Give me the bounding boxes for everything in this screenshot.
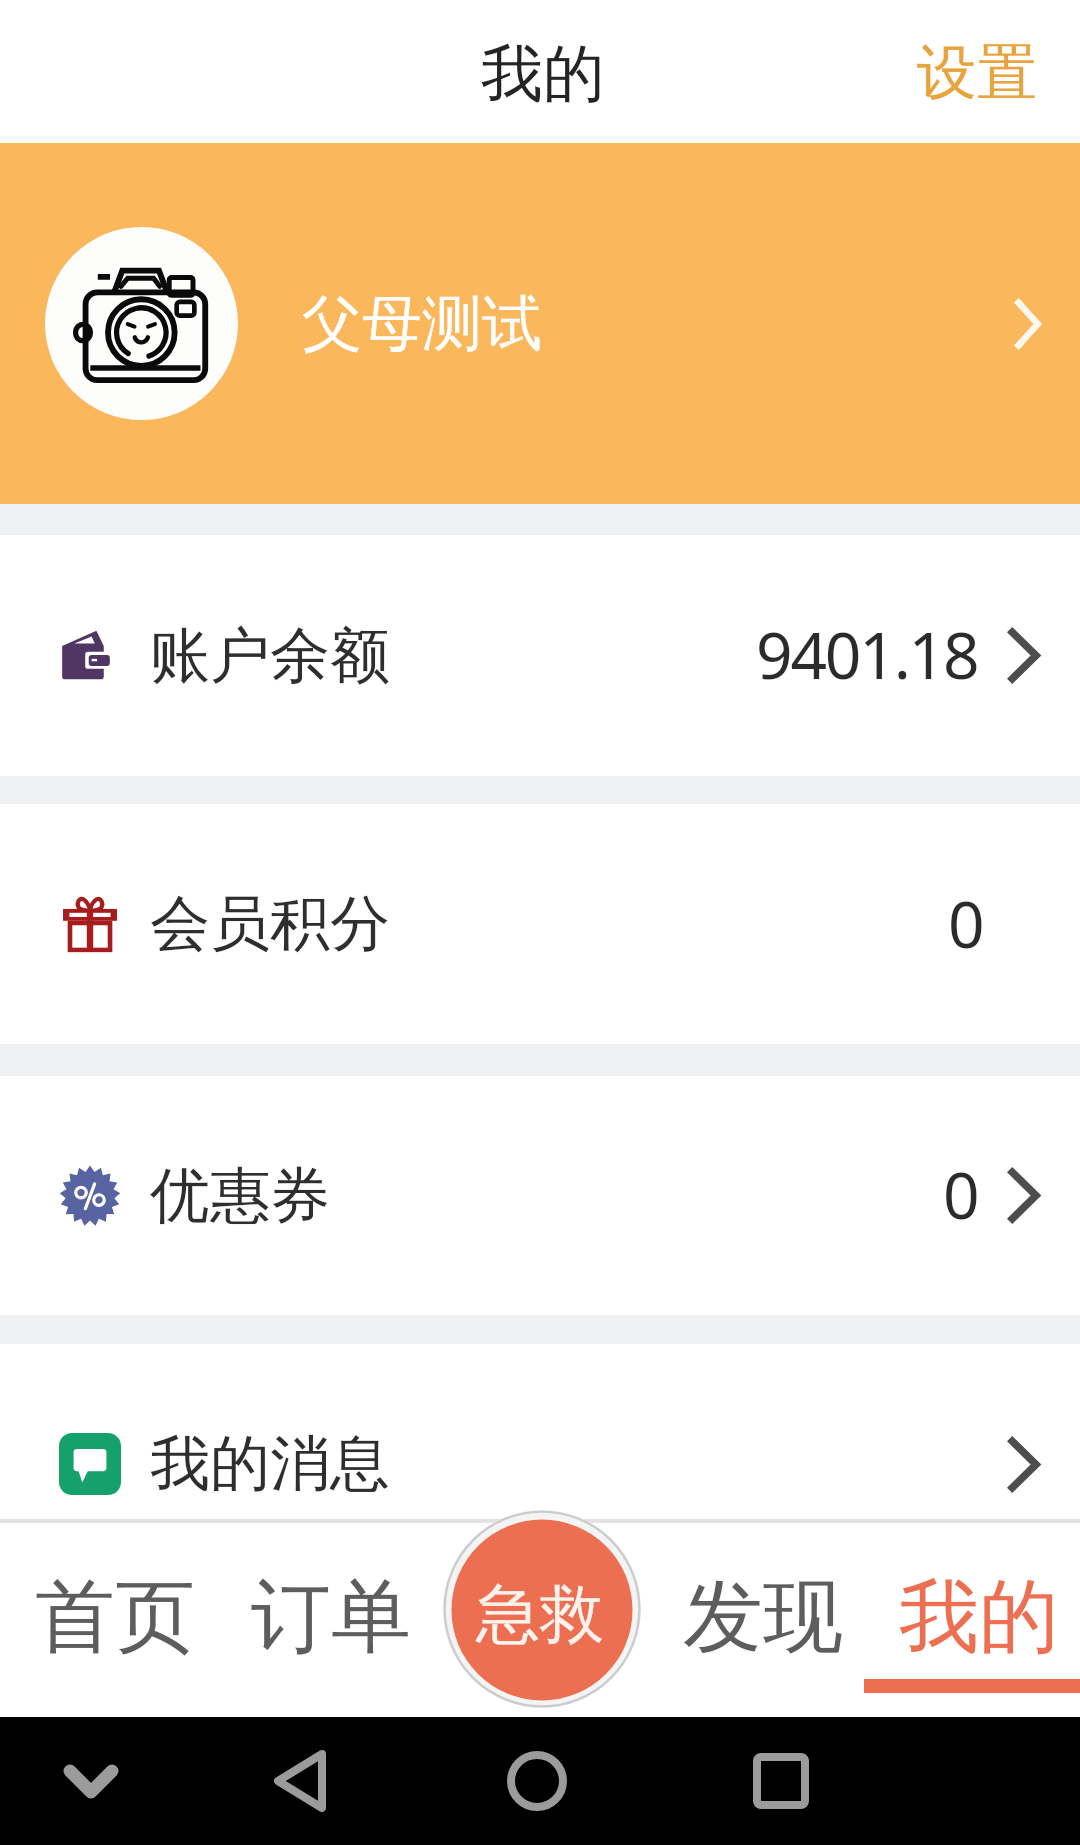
staticText: 0: [948, 880, 983, 967]
other: Profile: [1014, 298, 1043, 350]
button[interactable]: 急救: [443, 1511, 654, 1709]
button[interactable]: 订单: [216, 1519, 432, 1717]
staticText: 父母测试: [302, 286, 542, 362]
staticText: 我的: [899, 1567, 1059, 1668]
other: Open: [1007, 627, 1042, 684]
staticText: 订单: [251, 1567, 411, 1668]
staticText: 9401.18: [756, 611, 978, 698]
other: Open: [1007, 1167, 1042, 1224]
button[interactable]: 优惠券: [0, 1076, 1080, 1315]
staticText: 我的: [481, 35, 605, 113]
button[interactable]: 我的消息: [0, 1344, 1080, 1584]
staticText: 会员积分: [150, 886, 390, 962]
button[interactable]: 首页: [0, 1519, 216, 1717]
button[interactable]: 父母测试: [0, 143, 1080, 504]
button[interactable]: 设置: [877, 7, 1080, 139]
staticText: 首页: [35, 1567, 195, 1668]
button[interactable]: 会员积分: [0, 804, 1080, 1044]
staticText: 账户余额: [150, 618, 390, 694]
staticText: 发现: [683, 1567, 843, 1668]
staticText: 优惠券: [150, 1158, 330, 1234]
staticText: 急救: [476, 1574, 604, 1655]
staticText: 0: [943, 1151, 978, 1238]
button[interactable]: 账户余额: [0, 535, 1080, 776]
other: Open: [1007, 1436, 1042, 1493]
staticText: 我的消息: [150, 1426, 390, 1502]
staticText: 设置: [917, 35, 1037, 111]
button[interactable]: 发现: [648, 1519, 864, 1717]
button[interactable]: 我的: [864, 1519, 1080, 1717]
